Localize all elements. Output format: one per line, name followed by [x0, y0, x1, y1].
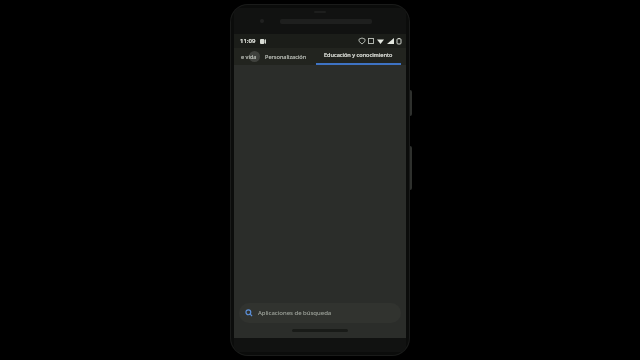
staticText: e vida — [241, 53, 257, 61]
button[interactable]: Educación y conocimiento — [311, 48, 406, 65]
staticText: Personalización — [265, 53, 307, 61]
button[interactable]: Aplicaciones de búsqueda — [239, 303, 401, 323]
staticText: 11:09 — [240, 37, 256, 45]
button[interactable]: Personalización — [261, 48, 311, 65]
staticText: Aplicaciones de búsqueda — [258, 309, 332, 317]
staticText: Educación y conocimiento — [324, 51, 393, 59]
button[interactable]: e vida — [234, 48, 261, 65]
